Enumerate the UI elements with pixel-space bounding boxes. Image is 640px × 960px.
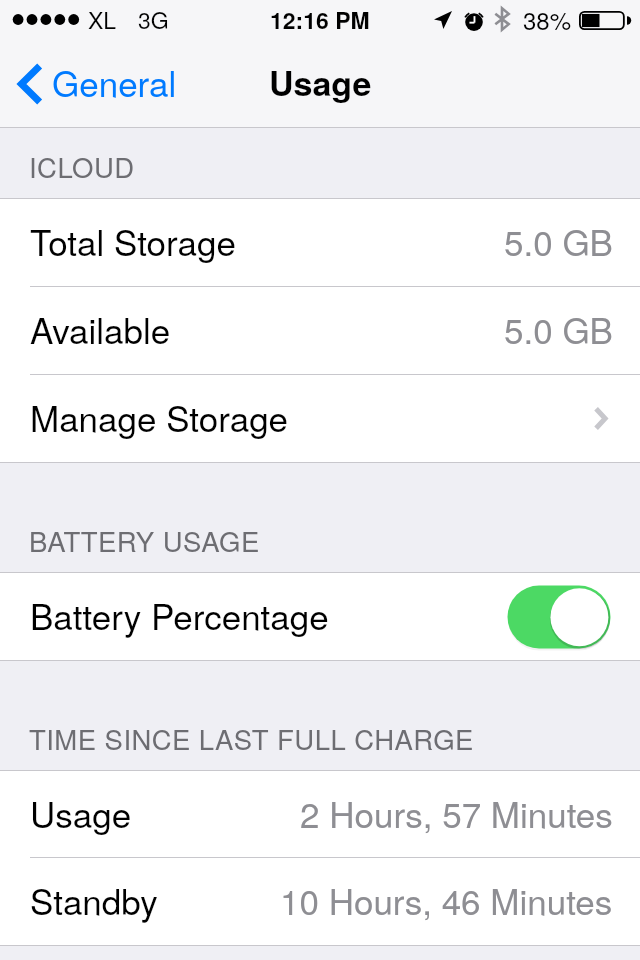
button[interactable]: Usage (0, 771, 640, 858)
staticText: Usage (269, 58, 372, 107)
staticText: Usage (30, 788, 132, 838)
button[interactable]: Available (0, 287, 640, 375)
staticText: 5.0 GB (504, 216, 613, 266)
staticText: ICLOUD (29, 146, 135, 185)
staticText: XL (88, 3, 117, 36)
staticText: Standby (30, 875, 158, 925)
staticText: BATTERY USAGE (29, 520, 260, 559)
staticText: 38% (523, 2, 572, 36)
staticText: General (52, 57, 177, 107)
staticText: Total Storage (30, 216, 236, 266)
staticText: Manage Storage (30, 392, 289, 442)
other: Manage Storage (593, 406, 609, 431)
button[interactable]: Manage Storage (0, 375, 640, 462)
staticText: 3G (138, 3, 169, 36)
staticText: Available (30, 304, 171, 354)
staticText: TIME SINCE LAST FULL CHARGE (29, 718, 474, 757)
staticText: 2 Hours, 57 Minutes (300, 788, 613, 838)
staticText: 10 Hours, 46 Minutes (280, 875, 613, 925)
button[interactable]: General (0, 59, 187, 109)
button[interactable]: Standby (0, 858, 640, 945)
staticText: Battery Percentage (30, 590, 329, 640)
staticText: 5.0 GB (504, 304, 613, 354)
button[interactable]: Total Storage (0, 199, 640, 287)
staticText: 12:16 PM (270, 3, 370, 36)
button[interactable]: Battery Percentage toggle (507, 585, 611, 649)
